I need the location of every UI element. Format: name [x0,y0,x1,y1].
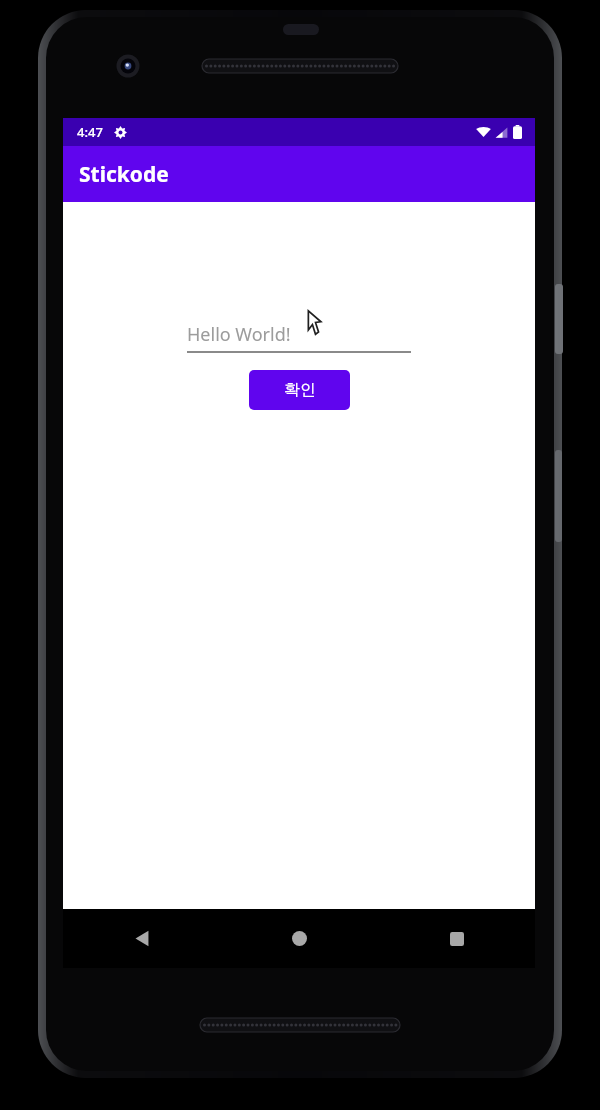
button[interactable]: 확인 [249,370,350,410]
staticText: Stickode [79,160,169,189]
staticText: 확인 [284,380,316,400]
button[interactable]: Recent apps [378,909,535,968]
button[interactable]: Hello World! [187,321,411,353]
staticText: 4:47 [77,123,103,141]
staticText: Hello World! [187,322,291,347]
button[interactable]: Back [63,909,221,968]
button[interactable]: Home [221,909,378,968]
